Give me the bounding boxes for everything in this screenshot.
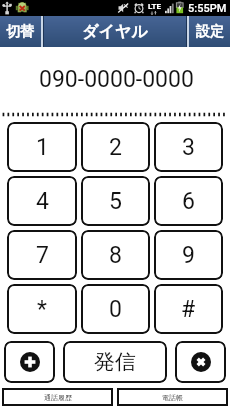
button[interactable]: 7	[7, 230, 77, 280]
staticText: 090-0000-0000	[39, 66, 194, 93]
button[interactable]: 5	[81, 176, 150, 226]
button[interactable]: 電話帳	[117, 388, 228, 406]
staticText: 9	[182, 242, 195, 269]
staticText: 0	[109, 296, 122, 323]
button[interactable]: 切替	[0, 16, 40, 47]
staticText: 3	[182, 134, 195, 161]
staticText: 切替	[6, 23, 34, 41]
staticText: 電話帳	[162, 393, 183, 402]
staticText: #	[181, 296, 196, 323]
button[interactable]: Add contact	[4, 341, 55, 383]
staticText: 7	[36, 242, 49, 269]
button[interactable]: 8	[81, 230, 150, 280]
button[interactable]: 発信	[63, 341, 167, 383]
staticText: 6	[182, 188, 195, 215]
staticText: 2	[109, 134, 122, 161]
staticText: 発信	[94, 349, 136, 375]
button[interactable]: 4	[7, 176, 77, 226]
button[interactable]: 通話履歴	[2, 388, 113, 406]
button[interactable]: 3	[154, 122, 223, 172]
button[interactable]: 1	[7, 122, 77, 172]
staticText: LTE	[148, 2, 161, 11]
button[interactable]: 0	[81, 284, 150, 334]
staticText: 5:55PM	[188, 2, 227, 15]
staticText: 8	[109, 242, 122, 269]
button[interactable]: 9	[154, 230, 223, 280]
button[interactable]: 2	[81, 122, 150, 172]
button[interactable]: 6	[154, 176, 223, 226]
staticText: 1	[36, 134, 49, 161]
staticText: 設定	[196, 23, 224, 41]
button[interactable]: #	[154, 284, 223, 334]
button[interactable]: *	[7, 284, 77, 334]
staticText: 通話履歴	[44, 393, 72, 402]
staticText: 5	[109, 188, 122, 215]
staticText: *	[37, 296, 47, 323]
button[interactable]: 設定	[190, 16, 230, 47]
button[interactable]: Delete	[175, 341, 226, 383]
staticText: ダイヤル	[82, 22, 148, 42]
staticText: 4	[36, 188, 49, 215]
